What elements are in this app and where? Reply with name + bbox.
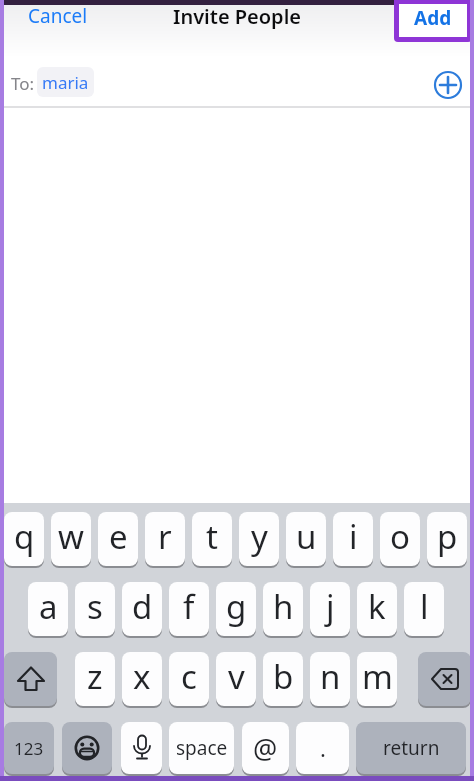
staticText: v <box>228 654 245 699</box>
button[interactable]: Cancel <box>28 3 88 29</box>
button[interactable]: m <box>357 652 397 706</box>
button[interactable]: e <box>98 512 138 566</box>
staticText: q <box>14 514 35 559</box>
staticText: To: <box>11 72 35 95</box>
button[interactable]: . <box>296 722 349 774</box>
staticText: f <box>183 584 195 629</box>
staticText: w <box>58 514 84 559</box>
staticText: y <box>251 514 268 559</box>
button[interactable]: a <box>28 582 68 636</box>
staticText: Cancel <box>28 3 88 29</box>
button[interactable]: o <box>380 512 420 566</box>
button[interactable]: w <box>51 512 91 566</box>
button[interactable] <box>433 70 463 100</box>
staticText: @ <box>253 730 278 767</box>
button[interactable]: u <box>286 512 326 566</box>
button[interactable]: c <box>169 652 209 706</box>
button[interactable]: n <box>310 652 350 706</box>
button[interactable]: v <box>216 652 256 706</box>
button[interactable]: f <box>169 582 209 636</box>
staticText: n <box>320 654 341 699</box>
staticText: l <box>420 584 429 629</box>
staticText: maria <box>42 71 89 94</box>
staticText: return <box>383 735 440 761</box>
button[interactable]: @ <box>242 722 289 774</box>
button[interactable]: maria <box>37 67 94 97</box>
button[interactable]: b <box>263 652 303 706</box>
button[interactable]: Add <box>399 4 467 37</box>
staticText: Add <box>414 5 452 31</box>
button[interactable]: l <box>404 582 444 636</box>
button[interactable] <box>4 652 57 706</box>
staticText: s <box>87 584 103 629</box>
button[interactable]: p <box>427 512 467 566</box>
staticText: u <box>296 514 317 559</box>
button[interactable]: j <box>310 582 350 636</box>
button[interactable]: d <box>122 582 162 636</box>
button[interactable]: x <box>122 652 162 706</box>
button[interactable]: space <box>169 722 234 774</box>
staticText: i <box>349 514 358 559</box>
staticText: k <box>368 584 386 629</box>
button[interactable] <box>121 722 162 774</box>
button[interactable] <box>418 652 471 706</box>
staticText: r <box>158 514 172 559</box>
button[interactable]: g <box>216 582 256 636</box>
staticText: x <box>133 654 151 699</box>
staticText: p <box>437 514 458 559</box>
button[interactable]: h <box>263 582 303 636</box>
button[interactable]: t <box>192 512 232 566</box>
staticText: o <box>390 514 410 559</box>
button[interactable]: z <box>75 652 115 706</box>
staticText: d <box>132 584 153 629</box>
staticText: g <box>226 584 247 629</box>
staticText: m <box>362 654 393 699</box>
button[interactable]: k <box>357 582 397 636</box>
staticText: . <box>320 733 326 763</box>
staticText: z <box>87 654 103 699</box>
staticText: space <box>176 735 228 761</box>
button[interactable] <box>62 722 112 774</box>
button[interactable]: y <box>239 512 279 566</box>
button[interactable]: q <box>4 512 44 566</box>
staticText: h <box>273 584 294 629</box>
staticText: Invite People <box>173 3 301 30</box>
staticText: j <box>326 584 335 629</box>
staticText: e <box>109 514 128 559</box>
button[interactable]: r <box>145 512 185 566</box>
staticText: 123 <box>14 737 44 760</box>
button[interactable]: i <box>333 512 373 566</box>
button[interactable]: return <box>356 722 466 774</box>
staticText: a <box>39 584 58 629</box>
button[interactable]: s <box>75 582 115 636</box>
button[interactable]: 123 <box>4 722 54 774</box>
staticText: t <box>206 514 218 559</box>
staticText: c <box>181 654 197 699</box>
staticText: b <box>273 654 294 699</box>
